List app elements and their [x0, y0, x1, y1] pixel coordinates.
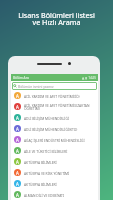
staticText: AİLE VE TÜKETİCİ BİLİMLERİ [24, 149, 68, 153]
staticText: A [16, 137, 19, 143]
button[interactable]: A [11, 189, 98, 200]
staticText: ADLİ BİLİŞİM MÜHENDİSLİĞİ [24, 116, 69, 120]
staticText: A [16, 104, 19, 110]
staticText: AĞAÇ İŞLERİ ENDÜSTRİ MÜHENDİSLİĞİ [24, 138, 85, 142]
button[interactable]: A [11, 90, 98, 101]
staticText: ALMAN DİLİ VE EDEBİYATI [24, 193, 65, 197]
staticText: AKTÜERYA BİLİMLERİ [24, 160, 57, 164]
button[interactable]: A [11, 134, 98, 145]
staticText: A [16, 181, 19, 187]
staticText: Bölüm Ara [13, 76, 29, 80]
button[interactable]: Search [12, 82, 97, 90]
staticText: A [16, 93, 19, 99]
staticText: ADLİ BİLİŞİM MÜHENDİSLİĞİ(KTO) [24, 127, 78, 131]
button[interactable]: A [11, 145, 98, 156]
other: Search [13, 84, 17, 88]
staticText: ACİL YARDIM VE AFET YÖNETİMİ(UZAKTAN ÖĞR… [24, 103, 98, 111]
button[interactable]: A [11, 123, 98, 134]
staticText: A [16, 115, 19, 121]
staticText: Bölümün ismini yazınız [18, 84, 54, 88]
button[interactable]: A [11, 167, 98, 178]
button[interactable]: A [11, 156, 98, 167]
staticText: A [16, 159, 19, 165]
staticText: Lisans Bölümleri listesi ve Hızlı Arama [0, 10, 113, 27]
staticText: A [16, 148, 19, 154]
staticText: ▲ ▮ 14:25 [82, 76, 96, 80]
button[interactable]: A [11, 178, 98, 189]
staticText: A [16, 126, 19, 132]
button[interactable]: A [11, 112, 98, 123]
staticText: AKTÜERYA BİLİMLERİ [24, 182, 57, 186]
staticText: ACİL YARDIM VE AFET YÖNETİMİ(İÖ) [24, 94, 80, 98]
staticText: AKTÜERYA VE RİSK YÖNETİMİ [24, 171, 70, 175]
staticText: A [16, 192, 19, 198]
button[interactable]: A [11, 101, 98, 112]
staticText: A [16, 170, 19, 176]
